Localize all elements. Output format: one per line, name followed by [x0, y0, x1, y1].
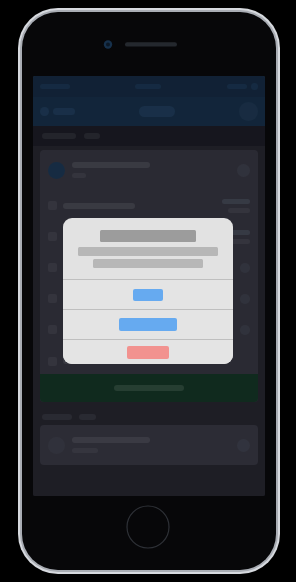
button[interactable]: Dialog action [63, 280, 233, 309]
button[interactable] [40, 425, 258, 465]
button[interactable] [40, 374, 258, 402]
button[interactable]: More options [40, 150, 258, 402]
button[interactable] [139, 106, 175, 117]
button[interactable]: Home [126, 505, 170, 549]
button[interactable]: Search [40, 107, 49, 116]
button[interactable]: Dialog action [63, 310, 233, 339]
button[interactable]: More options [237, 164, 250, 177]
button[interactable]: Dialog action [63, 340, 233, 364]
